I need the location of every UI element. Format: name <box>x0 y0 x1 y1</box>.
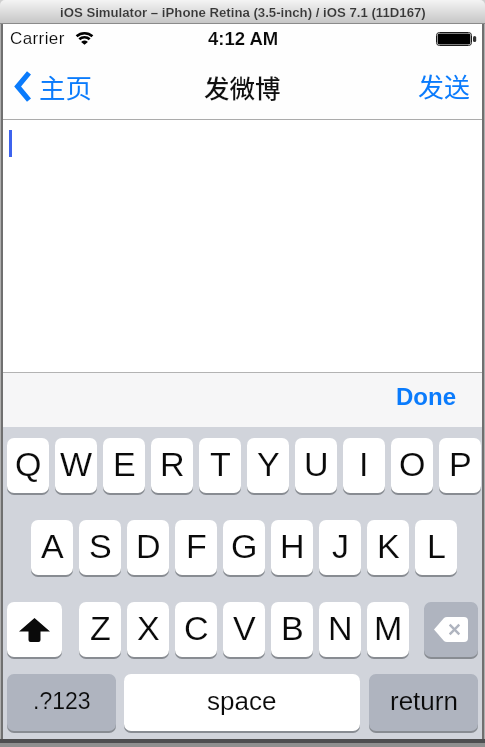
button[interactable]: return <box>369 674 478 731</box>
staticText: return <box>390 686 458 715</box>
button[interactable]: B <box>271 602 313 657</box>
staticText: P <box>449 445 472 483</box>
button[interactable]: I <box>343 438 385 493</box>
button[interactable]: J <box>319 520 361 575</box>
staticText: T <box>210 445 231 483</box>
staticText: L <box>427 527 446 565</box>
button[interactable]: U <box>295 438 337 493</box>
staticText: Z <box>90 609 111 647</box>
button[interactable]: 发送 <box>405 52 471 120</box>
button[interactable]: M <box>367 602 409 657</box>
staticText: 主页 <box>39 67 92 105</box>
button[interactable]: L <box>415 520 457 575</box>
button[interactable]: .?123 <box>7 674 116 731</box>
staticText: O <box>399 445 426 483</box>
staticText: A <box>41 527 64 565</box>
staticText: Q <box>15 445 42 483</box>
staticText: C <box>184 609 209 647</box>
staticText: Y <box>257 445 280 483</box>
staticText: N <box>328 609 353 647</box>
button[interactable]: P <box>439 438 481 493</box>
staticText: Done <box>396 383 456 410</box>
button[interactable]: N <box>319 602 361 657</box>
button[interactable]: Q <box>7 438 49 493</box>
button[interactable]: W <box>55 438 97 493</box>
button[interactable]: X <box>127 602 169 657</box>
staticText: U <box>304 445 329 483</box>
staticText: I <box>359 445 369 483</box>
button[interactable]: A <box>31 520 73 575</box>
staticText: V <box>233 609 256 647</box>
staticText: 发微博 <box>204 68 281 105</box>
button[interactable]: T <box>199 438 241 493</box>
button[interactable]: space <box>124 674 360 731</box>
button[interactable] <box>424 602 478 657</box>
button[interactable]: 主页 <box>39 52 119 120</box>
staticText: F <box>186 527 207 565</box>
staticText: E <box>113 445 136 483</box>
button[interactable] <box>3 120 482 372</box>
staticText: J <box>332 527 349 565</box>
button[interactable]: K <box>367 520 409 575</box>
button[interactable]: Y <box>247 438 289 493</box>
staticText: R <box>160 445 185 483</box>
staticText: W <box>60 445 93 483</box>
staticText: S <box>89 527 112 565</box>
staticText: Carrier <box>10 29 65 48</box>
button[interactable]: V <box>223 602 265 657</box>
button[interactable] <box>7 602 62 657</box>
button[interactable]: H <box>271 520 313 575</box>
staticText: K <box>377 527 400 565</box>
staticText: G <box>231 527 258 565</box>
button[interactable] <box>15 71 31 102</box>
staticText: D <box>136 527 161 565</box>
staticText: X <box>137 609 160 647</box>
staticText: 发送 <box>418 67 471 105</box>
button[interactable]: E <box>103 438 145 493</box>
button[interactable]: G <box>223 520 265 575</box>
button[interactable]: S <box>79 520 121 575</box>
button[interactable]: D <box>127 520 169 575</box>
button[interactable]: F <box>175 520 217 575</box>
staticText: space <box>207 686 277 715</box>
button[interactable]: Z <box>79 602 121 657</box>
button[interactable]: O <box>391 438 433 493</box>
button[interactable]: C <box>175 602 217 657</box>
staticText: H <box>280 527 305 565</box>
button[interactable]: Done <box>330 369 456 423</box>
staticText: .?123 <box>33 688 91 714</box>
button[interactable]: R <box>151 438 193 493</box>
staticText: M <box>374 609 403 647</box>
staticText: 4:12 AM <box>208 28 279 49</box>
staticText: B <box>281 609 304 647</box>
staticText: iOS Simulator – iPhone Retina (3.5-inch)… <box>60 5 426 20</box>
